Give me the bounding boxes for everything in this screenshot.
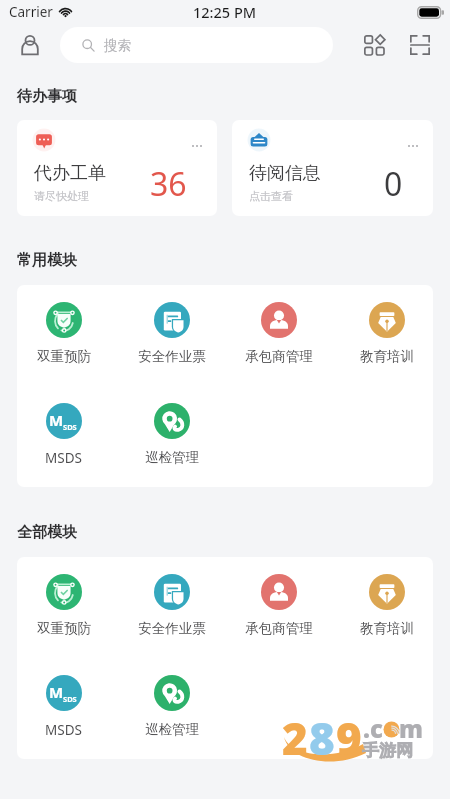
button[interactable]: 承包商管理: [232, 574, 325, 637]
button[interactable]: 巡检管理: [125, 675, 218, 738]
button[interactable]: 巡检管理: [125, 403, 218, 466]
staticText: 9: [336, 708, 363, 756]
button[interactable]: 代办工单: [17, 120, 217, 216]
staticText: 巡检管理: [145, 721, 199, 738]
button[interactable]: 教育培训: [340, 574, 433, 637]
staticText: .c: [363, 712, 383, 745]
staticText: 教育培训: [360, 348, 414, 365]
button[interactable]: Profile: [0, 24, 60, 66]
staticText: 待办事项: [17, 87, 77, 106]
button[interactable]: M: [17, 403, 110, 467]
button[interactable]: 承包商管理: [232, 302, 325, 365]
staticText: 0: [384, 162, 403, 206]
staticText: 12:25 PM: [193, 2, 257, 22]
staticText: m: [399, 712, 423, 745]
staticText: 8: [309, 708, 336, 756]
staticText: M: [49, 410, 64, 430]
staticText: SDS: [63, 694, 77, 704]
staticText: 待阅信息: [249, 162, 321, 185]
staticText: MSDS: [45, 721, 82, 739]
button[interactable]: 待阅信息: [232, 120, 433, 216]
button[interactable]: 搜索: [60, 27, 333, 63]
button[interactable]: 安全作业票: [125, 574, 218, 637]
button[interactable]: M: [17, 675, 110, 739]
staticText: 2: [282, 708, 309, 756]
button[interactable]: 教育培训: [340, 302, 433, 365]
staticText: M: [49, 682, 64, 702]
staticText: 手游网: [362, 740, 413, 761]
staticText: Carrier: [9, 3, 53, 21]
staticText: 承包商管理: [245, 620, 313, 637]
button[interactable]: Scan: [402, 27, 438, 63]
staticText: 安全作业票: [138, 620, 206, 637]
staticText: 点击查看: [249, 189, 293, 203]
staticText: 全部模块: [17, 523, 77, 542]
staticText: 搜索: [104, 37, 131, 54]
button[interactable]: Apps: [356, 27, 392, 63]
staticText: 双重预防: [37, 348, 91, 365]
staticText: 36: [150, 162, 187, 206]
staticText: 双重预防: [37, 620, 91, 637]
button[interactable]: 安全作业票: [125, 302, 218, 365]
button[interactable]: 双重预防: [17, 574, 110, 637]
staticText: 代办工单: [34, 162, 106, 185]
button[interactable]: 双重预防: [17, 302, 110, 365]
staticText: 承包商管理: [245, 348, 313, 365]
staticText: 常用模块: [17, 251, 77, 270]
staticText: 教育培训: [360, 620, 414, 637]
staticText: 巡检管理: [145, 449, 199, 466]
staticText: SDS: [63, 422, 77, 432]
staticText: 安全作业票: [138, 348, 206, 365]
staticText: MSDS: [45, 449, 82, 467]
staticText: 请尽快处理: [34, 189, 89, 203]
